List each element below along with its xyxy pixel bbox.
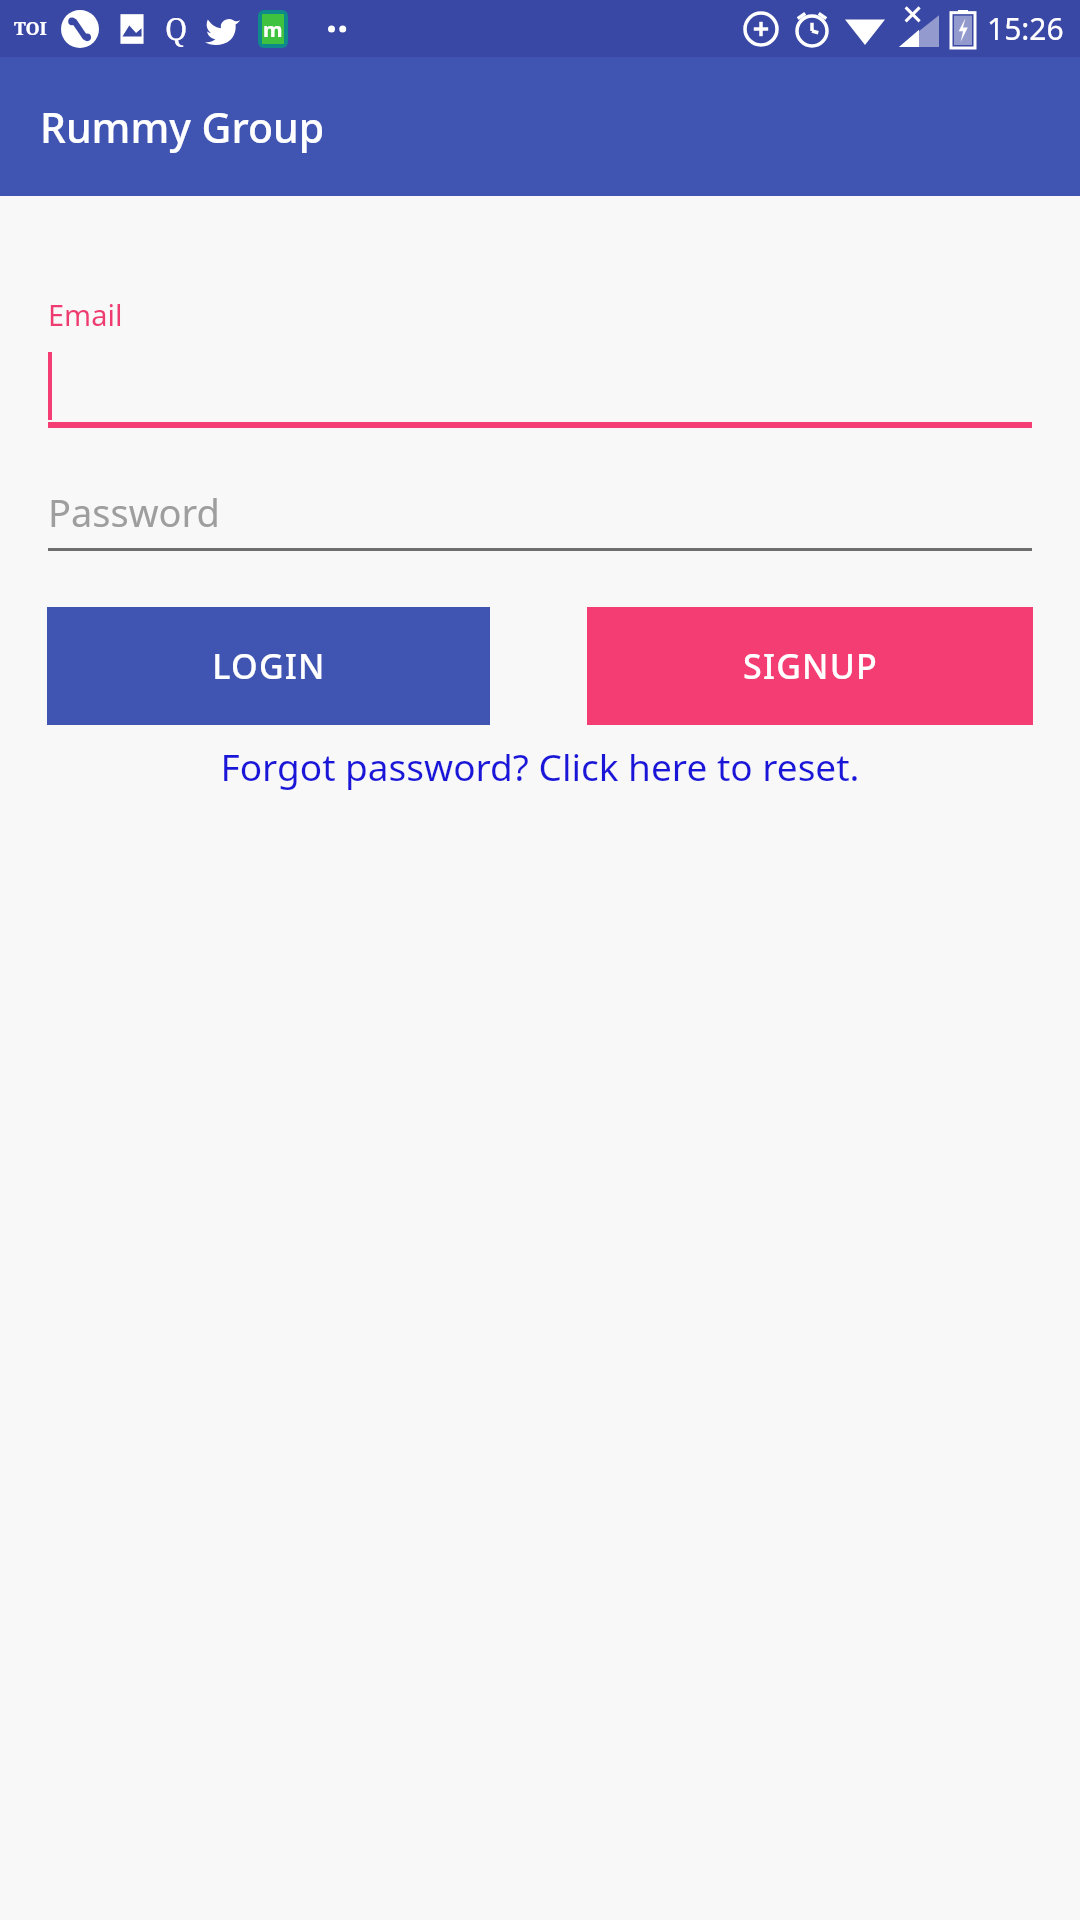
- staticText: TOI: [14, 16, 47, 41]
- staticText: Forgot password? Click here to reset.: [220, 741, 860, 791]
- staticText: 15:26: [987, 8, 1064, 49]
- button[interactable]: Email: [48, 295, 1032, 428]
- staticText: Password: [48, 486, 220, 538]
- staticText: m: [263, 16, 283, 43]
- staticText: Email: [48, 295, 123, 334]
- staticText: Q: [165, 8, 188, 49]
- button[interactable]: LOGIN: [47, 607, 490, 725]
- button[interactable]: SIGNUP: [587, 607, 1033, 725]
- button[interactable]: Password: [48, 476, 1032, 551]
- staticText: Rummy Group: [40, 99, 325, 155]
- staticText: LOGIN: [212, 643, 326, 689]
- staticText: SIGNUP: [743, 643, 878, 689]
- button[interactable]: Forgot password? Click here to reset.: [0, 741, 1080, 791]
